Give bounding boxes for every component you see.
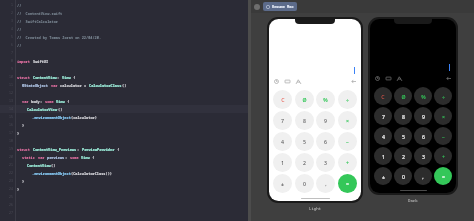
staticText: 2: [11, 11, 13, 15]
staticText: (CalculatorClass()): [71, 171, 112, 176]
staticText: (): [58, 107, 63, 112]
button[interactable]: ×: [338, 111, 357, 130]
button[interactable]: %: [414, 87, 432, 105]
button[interactable]: Keyboard: [386, 76, 391, 81]
button[interactable]: ×: [434, 107, 452, 125]
staticText: =: [84, 83, 89, 88]
staticText: 15: [9, 115, 13, 119]
button[interactable]: History: [375, 76, 380, 81]
button[interactable]: 2: [295, 153, 314, 172]
staticText: 17: [9, 131, 13, 135]
button[interactable]: 5: [295, 132, 314, 151]
staticText: −: [442, 133, 445, 140]
button[interactable]: Ø: [295, 90, 314, 109]
staticText: //: [17, 43, 22, 48]
staticText: some: [70, 155, 81, 160]
button[interactable]: 7: [273, 111, 292, 130]
button[interactable]: History: [274, 79, 279, 84]
button[interactable]: ,: [414, 167, 432, 185]
button[interactable]: 6: [414, 127, 432, 145]
button[interactable]: 3: [414, 147, 432, 165]
staticText: calculator: [60, 83, 84, 88]
staticText: previews: [47, 155, 65, 160]
button[interactable]: 3: [316, 153, 335, 172]
button[interactable]: −: [338, 132, 357, 151]
button[interactable]: 6: [316, 132, 335, 151]
button[interactable]: %: [316, 90, 335, 109]
button[interactable]: Graph: [296, 79, 301, 84]
staticText: 2: [303, 159, 306, 166]
button[interactable]: 1: [374, 147, 392, 165]
button[interactable]: 0: [295, 174, 314, 193]
button[interactable]: ,: [316, 174, 335, 193]
staticText: C: [281, 96, 285, 103]
staticText: 26: [9, 203, 13, 207]
staticText: 12: [9, 91, 13, 95]
staticText: {: [65, 99, 70, 104]
staticText: Dark: [408, 198, 418, 203]
staticText: body: [31, 99, 40, 104]
button[interactable]: +: [338, 153, 357, 172]
button[interactable]: 2: [394, 147, 412, 165]
staticText: %: [421, 93, 426, 100]
staticText: 1: [382, 153, 385, 160]
button[interactable]: ÷: [338, 90, 357, 109]
staticText: 25: [9, 195, 13, 199]
staticText: 3: [422, 153, 425, 160]
button[interactable]: Graph: [397, 76, 402, 81]
staticText: ÷: [442, 93, 445, 100]
staticText: View: [62, 75, 71, 80]
button[interactable]: 9: [414, 107, 432, 125]
staticText: var: [22, 99, 31, 104]
button[interactable]: 0: [394, 167, 412, 185]
staticText: 14: [9, 107, 13, 111]
button[interactable]: −: [434, 127, 452, 145]
staticText: 20: [9, 155, 13, 159]
button[interactable]: 7: [374, 107, 392, 125]
button[interactable]: +: [434, 147, 452, 165]
button[interactable]: =: [434, 167, 452, 185]
staticText: 5: [11, 35, 13, 39]
staticText: View: [56, 99, 65, 104]
staticText: ×: [346, 117, 349, 124]
button[interactable]: 4: [374, 127, 392, 145]
button[interactable]: 5: [394, 127, 412, 145]
button[interactable]: Preview status: [254, 4, 260, 10]
button[interactable]: 9: [316, 111, 335, 130]
staticText: .environmentObject: [32, 171, 71, 176]
button[interactable]: Delete: [446, 76, 451, 81]
staticText: struct: [17, 75, 33, 80]
staticText: 6: [324, 138, 327, 145]
button[interactable]: Resume Mac: [263, 2, 297, 11]
button[interactable]: 4: [273, 132, 292, 151]
button[interactable]: 8: [394, 107, 412, 125]
staticText: .environmentObject: [32, 115, 71, 120]
button[interactable]: 8: [295, 111, 314, 130]
button[interactable]: C: [273, 90, 292, 109]
staticText: 8: [402, 113, 405, 120]
staticText: View: [81, 155, 90, 160]
button[interactable]: Delete: [351, 79, 356, 84]
button[interactable]: 1: [273, 153, 292, 172]
staticText: 7: [11, 51, 13, 55]
staticText: 23: [9, 179, 13, 183]
button[interactable]: C: [374, 87, 392, 105]
staticText: 5: [402, 133, 405, 140]
staticText: some: [45, 99, 56, 104]
staticText: 4: [382, 133, 385, 140]
staticText: //: [17, 3, 22, 8]
button[interactable]: =: [338, 174, 357, 193]
staticText: {: [115, 147, 120, 152]
staticText: @StateObject: [22, 83, 51, 88]
button[interactable]: ±: [374, 167, 392, 185]
staticText: =: [442, 173, 445, 180]
button[interactable]: Keyboard: [285, 79, 290, 84]
staticText: ,: [422, 173, 424, 180]
button[interactable]: ±: [273, 174, 292, 193]
staticText: ±: [382, 173, 385, 180]
staticText: 7: [382, 113, 385, 120]
button[interactable]: Ø: [394, 87, 412, 105]
staticText: Light: [309, 206, 321, 211]
staticText: static: [22, 155, 38, 160]
button[interactable]: ÷: [434, 87, 452, 105]
